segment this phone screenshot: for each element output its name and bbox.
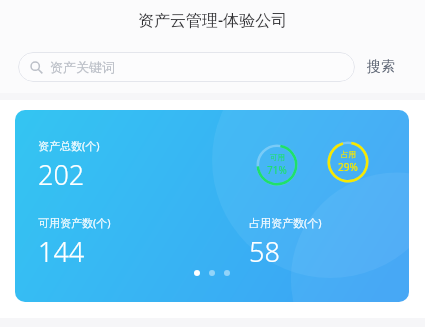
staticText: 58 — [249, 233, 280, 270]
staticText: 71% — [267, 163, 287, 177]
button[interactable]: 可用资产占比 71% — [255, 143, 299, 187]
staticText: 搜索 — [367, 58, 395, 76]
staticText: 资产总数(个) — [38, 138, 100, 153]
staticText: 占用资产数(个) — [249, 215, 322, 230]
staticText: 144 — [38, 233, 85, 270]
staticText: 资产云管理-体验公司 — [138, 9, 288, 31]
staticText: 占用 — [341, 150, 356, 159]
button[interactable]: 资产总数(个) — [15, 110, 409, 302]
staticText: 资产关键词 — [50, 59, 115, 75]
staticText: 可用 — [270, 153, 285, 162]
staticText: 可用资产数(个) — [38, 215, 111, 230]
staticText: 202 — [38, 156, 85, 193]
staticText: 29% — [338, 160, 358, 174]
button[interactable]: 资产关键词 — [18, 52, 355, 82]
button[interactable]: 占用资产占比 29% — [326, 140, 370, 184]
button[interactable]: 搜索 — [365, 50, 397, 84]
